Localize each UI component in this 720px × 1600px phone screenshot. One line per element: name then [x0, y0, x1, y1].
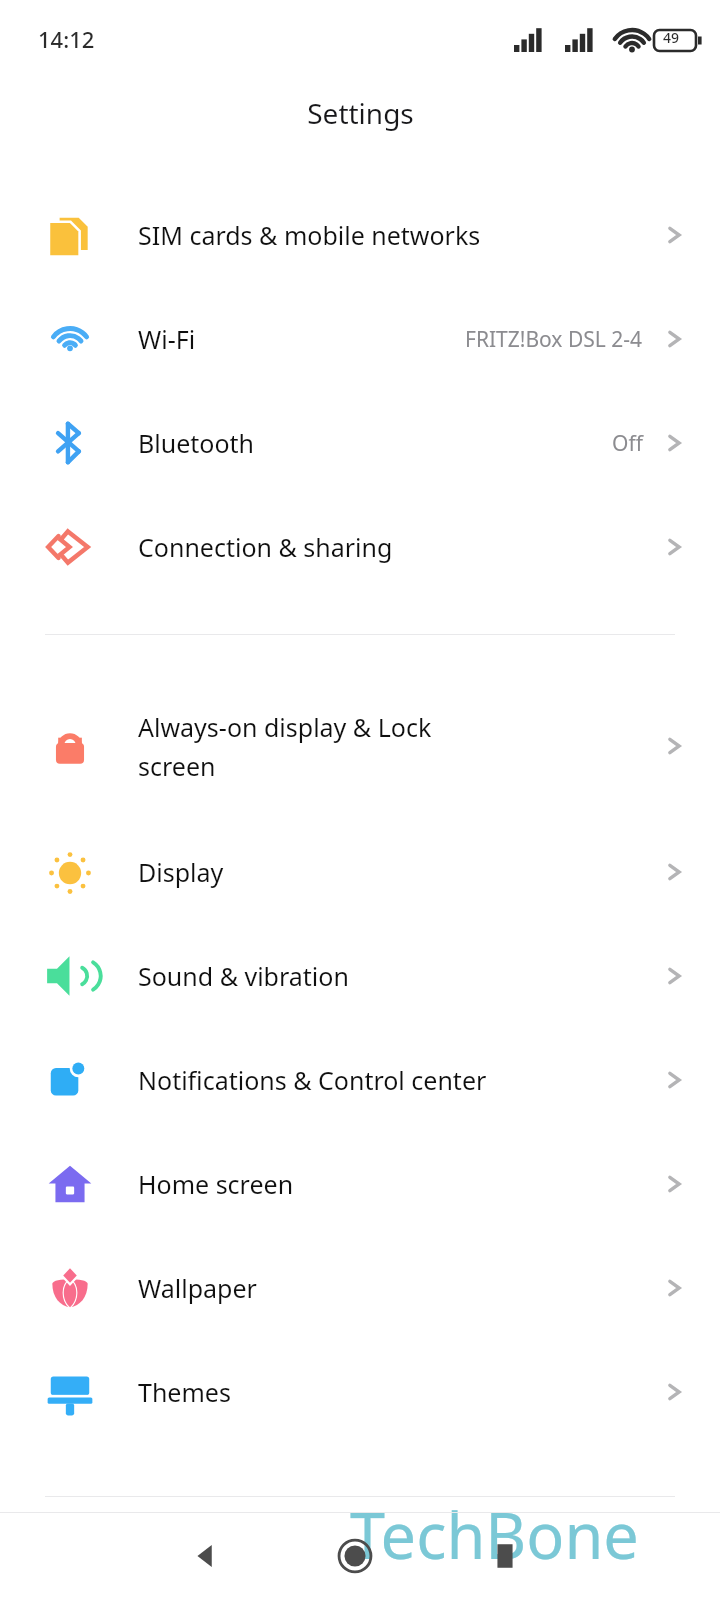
button[interactable]: Display	[0, 820, 720, 924]
button[interactable]: Back	[150, 1512, 260, 1600]
button[interactable]: Recents	[450, 1512, 560, 1600]
button[interactable]: Themes	[0, 1340, 720, 1444]
staticText: 49	[663, 28, 680, 47]
staticText: FRITZ!Box DSL 2-4	[465, 325, 643, 354]
staticText: Display	[138, 855, 659, 889]
button[interactable]: Wallpaper	[0, 1236, 720, 1340]
staticText: Wi-Fi	[138, 322, 465, 356]
staticText: Settings	[307, 94, 414, 132]
button[interactable]: Notifications & Control center	[0, 1028, 720, 1132]
staticText: 14:12	[38, 24, 95, 54]
staticText: Wallpaper	[138, 1271, 659, 1305]
button[interactable]: Bluetooth	[0, 391, 720, 495]
staticText: Connection & sharing	[138, 530, 659, 564]
button[interactable]: Sound & vibration	[0, 924, 720, 1028]
button[interactable]: Home screen	[0, 1132, 720, 1236]
button[interactable]: Connection & sharing	[0, 495, 720, 599]
staticText: Notifications & Control center	[138, 1063, 659, 1097]
staticText: Sound & vibration	[138, 959, 659, 993]
staticText: Off	[612, 429, 643, 458]
staticText: Home screen	[138, 1167, 659, 1201]
staticText: Bluetooth	[138, 426, 612, 460]
button[interactable]: Wi-Fi	[0, 287, 720, 391]
button[interactable]: Always-on display & Lock screen	[0, 679, 720, 813]
staticText: Always-on display & Lock screen	[138, 710, 659, 783]
staticText: Themes	[138, 1375, 659, 1409]
staticText: TechBone	[350, 1492, 639, 1578]
button[interactable]: Home	[300, 1512, 410, 1600]
staticText: SIM cards & mobile networks	[138, 218, 659, 252]
button[interactable]: SIM cards & mobile networks	[0, 183, 720, 287]
